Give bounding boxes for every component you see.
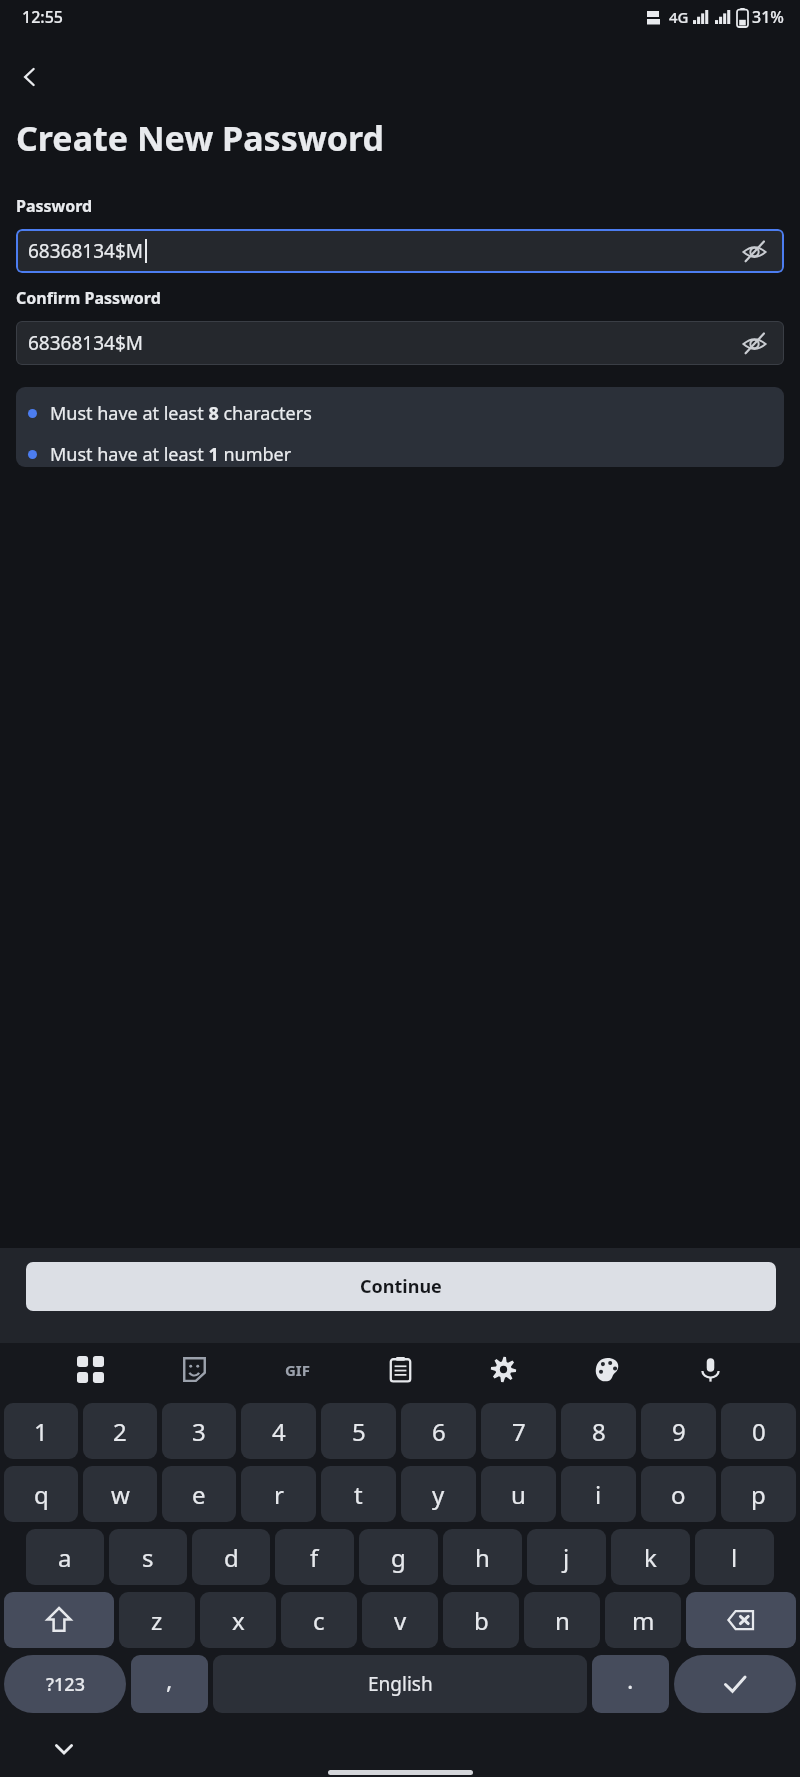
staticText: v: [394, 1604, 407, 1637]
staticText: o: [671, 1478, 686, 1511]
button[interactable]: m: [605, 1592, 681, 1648]
button[interactable]: 4: [241, 1403, 316, 1459]
button[interactable]: 3: [162, 1403, 236, 1459]
button[interactable]: Shift: [4, 1592, 114, 1648]
button[interactable]: 7: [481, 1403, 556, 1459]
staticText: z: [151, 1604, 163, 1637]
staticText: w: [111, 1478, 130, 1511]
staticText: Continue: [360, 1274, 442, 1299]
button[interactable]: u: [481, 1466, 556, 1522]
button[interactable]: Stickers: [171, 1346, 217, 1392]
staticText: 2: [113, 1415, 127, 1448]
button[interactable]: c: [281, 1592, 357, 1648]
button[interactable]: Clipboard: [377, 1346, 423, 1392]
button[interactable]: 9: [641, 1403, 716, 1459]
button[interactable]: ?123: [4, 1655, 126, 1713]
staticText: h: [475, 1541, 490, 1574]
button[interactable]: Backspace: [686, 1592, 796, 1648]
button[interactable]: Voice input: [687, 1346, 733, 1392]
staticText: 8: [592, 1415, 606, 1448]
button[interactable]: d: [192, 1529, 270, 1585]
staticText: 5: [352, 1415, 366, 1448]
staticText: 12:55: [22, 6, 63, 28]
staticText: m: [632, 1604, 655, 1637]
staticText: 7: [512, 1415, 526, 1448]
button[interactable]: p: [721, 1466, 796, 1522]
staticText: 1: [34, 1415, 48, 1448]
button[interactable]: 6: [401, 1403, 476, 1459]
staticText: a: [58, 1541, 72, 1574]
button[interactable]: q: [4, 1466, 78, 1522]
staticText: k: [644, 1541, 657, 1574]
button[interactable]: y: [401, 1466, 476, 1522]
button[interactable]: 5: [321, 1403, 396, 1459]
staticText: x: [232, 1604, 245, 1637]
staticText: 4G: [669, 7, 689, 27]
button[interactable]: x: [200, 1592, 276, 1648]
staticText: 68368134$M: [28, 330, 144, 356]
button[interactable]: a: [26, 1529, 104, 1585]
staticText: e: [192, 1478, 206, 1511]
button[interactable]: Back: [8, 55, 52, 99]
staticText: j: [563, 1541, 570, 1574]
staticText: u: [511, 1478, 526, 1511]
staticText: l: [731, 1541, 738, 1574]
staticText: 3: [192, 1415, 206, 1448]
staticText: r: [274, 1478, 284, 1511]
button[interactable]: o: [641, 1466, 716, 1522]
button[interactable]: i: [561, 1466, 636, 1522]
staticText: ?123: [46, 1672, 85, 1697]
button[interactable]: Toggle password visibility: [734, 323, 774, 363]
button[interactable]: .: [592, 1655, 669, 1713]
staticText: d: [224, 1541, 239, 1574]
button[interactable]: k: [611, 1529, 690, 1585]
button[interactable]: English: [213, 1655, 587, 1713]
button[interactable]: Settings: [480, 1346, 526, 1392]
staticText: i: [595, 1478, 602, 1511]
button[interactable]: Continue: [26, 1262, 776, 1311]
button[interactable]: Apps: [67, 1346, 113, 1392]
button[interactable]: 2: [83, 1403, 157, 1459]
staticText: Password: [16, 195, 93, 217]
button[interactable]: 8: [561, 1403, 636, 1459]
button[interactable]: 68368134$M: [16, 229, 784, 273]
staticText: GIF: [285, 1360, 310, 1380]
staticText: ,: [166, 1663, 173, 1696]
button[interactable]: g: [359, 1529, 438, 1585]
button[interactable]: j: [527, 1529, 606, 1585]
button[interactable]: 1: [4, 1403, 78, 1459]
button[interactable]: ,: [131, 1655, 208, 1713]
staticText: s: [142, 1541, 154, 1574]
staticText: q: [34, 1478, 49, 1511]
button[interactable]: t: [321, 1466, 396, 1522]
button[interactable]: 68368134$M: [16, 321, 784, 365]
button[interactable]: r: [241, 1466, 316, 1522]
button[interactable]: n: [524, 1592, 600, 1648]
button[interactable]: w: [83, 1466, 157, 1522]
button[interactable]: f: [275, 1529, 354, 1585]
button[interactable]: l: [695, 1529, 774, 1585]
staticText: 4: [272, 1415, 286, 1448]
staticText: 31%: [752, 6, 784, 28]
button[interactable]: h: [443, 1529, 522, 1585]
staticText: 6: [432, 1415, 446, 1448]
button[interactable]: Enter: [674, 1655, 796, 1713]
button[interactable]: Toggle password visibility: [734, 231, 774, 271]
button[interactable]: z: [119, 1592, 195, 1648]
button[interactable]: GIF: [274, 1346, 320, 1392]
staticText: p: [751, 1478, 766, 1511]
staticText: f: [310, 1541, 319, 1574]
staticText: t: [354, 1478, 363, 1511]
staticText: 0: [752, 1415, 766, 1448]
button[interactable]: b: [443, 1592, 519, 1648]
button[interactable]: Themes: [584, 1346, 630, 1392]
staticText: g: [391, 1541, 406, 1574]
staticText: 9: [672, 1415, 686, 1448]
staticText: .: [627, 1663, 634, 1696]
button[interactable]: e: [162, 1466, 236, 1522]
staticText: y: [432, 1478, 445, 1511]
button[interactable]: v: [362, 1592, 438, 1648]
button[interactable]: Hide keyboard: [44, 1729, 84, 1769]
button[interactable]: 0: [721, 1403, 796, 1459]
button[interactable]: s: [109, 1529, 187, 1585]
